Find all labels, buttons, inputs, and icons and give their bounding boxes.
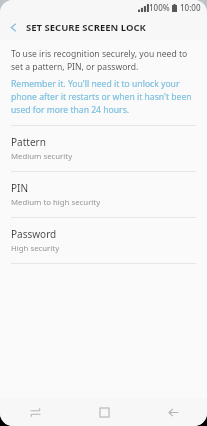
staticText: Medium to high security bbox=[11, 197, 101, 208]
staticText: Pattern bbox=[11, 135, 46, 149]
staticText: High security bbox=[11, 243, 60, 254]
staticText: Medium security bbox=[11, 151, 73, 162]
staticText: 100% bbox=[149, 2, 170, 13]
button[interactable]: PIN bbox=[0, 172, 207, 217]
button[interactable]: Back bbox=[0, 14, 26, 40]
staticText: Password bbox=[11, 227, 57, 241]
staticText: To use iris recognition securely, you ne… bbox=[11, 48, 196, 72]
button[interactable]: Back bbox=[150, 398, 196, 426]
staticText: SET SECURE SCREEN LOCK bbox=[26, 21, 146, 34]
staticText: PIN bbox=[11, 181, 29, 195]
staticText: 10:00 bbox=[180, 2, 201, 13]
staticText: Remember it. You'll need it to unlock yo… bbox=[11, 78, 196, 115]
button[interactable]: Pattern bbox=[0, 126, 207, 171]
button[interactable]: Password bbox=[0, 218, 207, 263]
button[interactable]: Home bbox=[81, 398, 127, 426]
button[interactable]: Recents bbox=[12, 398, 58, 426]
